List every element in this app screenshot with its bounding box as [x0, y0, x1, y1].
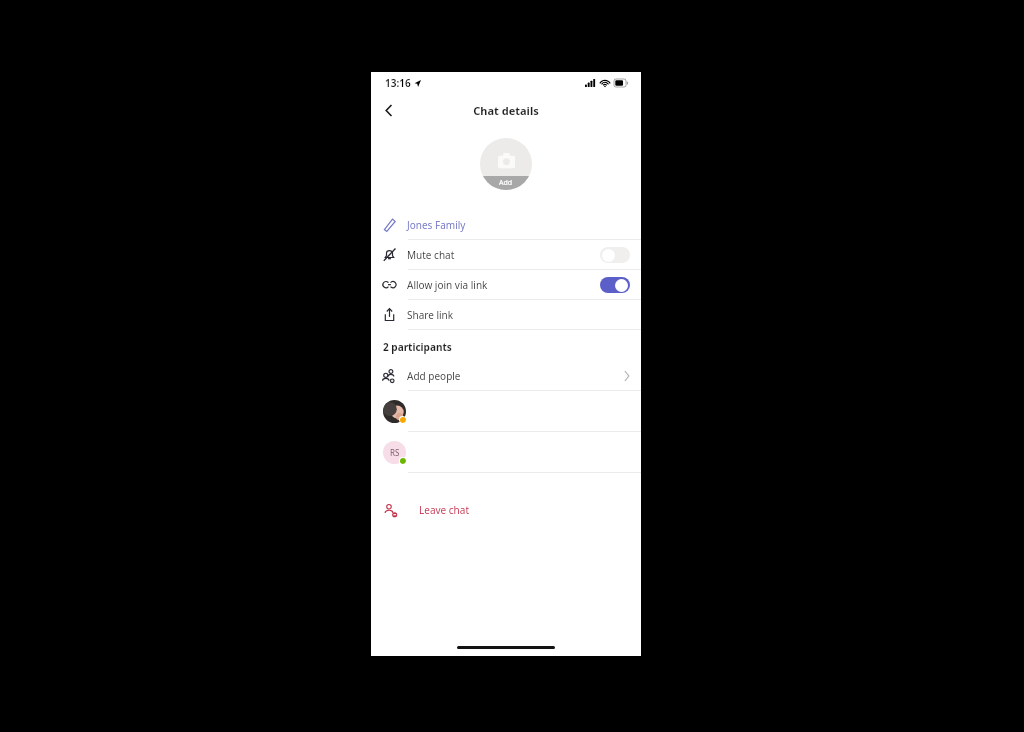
staticText: Share link	[407, 308, 454, 322]
staticText: Chat details	[473, 103, 539, 118]
button[interactable]: Share link	[371, 300, 641, 330]
button[interactable]	[371, 391, 641, 432]
staticText: 2 participants	[383, 340, 452, 354]
button[interactable]: On	[600, 277, 630, 293]
button[interactable]: Off	[600, 247, 630, 263]
button[interactable]: Leave chat	[371, 497, 641, 523]
staticText: Add	[499, 178, 513, 188]
button[interactable]: Mute chat	[371, 240, 641, 270]
staticText: Mute chat	[407, 248, 455, 262]
staticText: Leave chat	[419, 503, 470, 517]
staticText: RS	[390, 447, 400, 458]
staticText: Allow join via link	[407, 278, 488, 292]
button[interactable]: Add group photo	[480, 138, 532, 190]
button[interactable]: Jones Family	[371, 210, 641, 240]
staticText: Add people	[407, 369, 461, 383]
staticText: Jones Family	[407, 218, 466, 232]
button[interactable]: Allow join via link	[371, 270, 641, 300]
button[interactable]: RS	[371, 432, 641, 473]
button[interactable]: Add people	[371, 362, 641, 391]
button[interactable]: Back	[378, 99, 400, 121]
staticText: 13:16	[385, 76, 411, 90]
